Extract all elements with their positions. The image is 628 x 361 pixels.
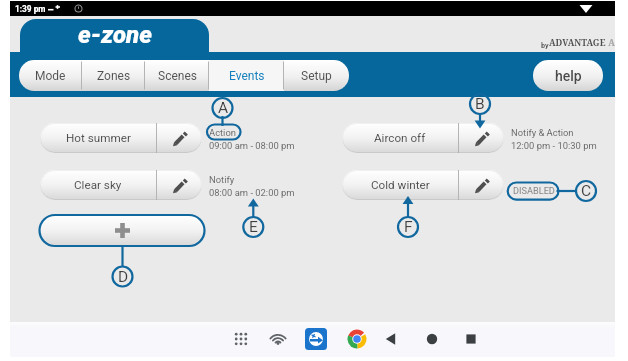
button[interactable]: Recents: [460, 328, 482, 350]
staticText: Cold winter: [371, 178, 430, 192]
staticText: E: [249, 218, 258, 236]
staticText: C: [581, 182, 592, 200]
staticText: DISABLED: [513, 185, 555, 196]
button[interactable]: Events: [209, 60, 284, 91]
button[interactable]: Edit Cold winter: [458, 170, 504, 200]
button[interactable]: Clear sky: [40, 170, 156, 200]
staticText: Hot summer: [66, 131, 131, 145]
staticText: Setup: [301, 69, 332, 83]
staticText: Scenes: [158, 69, 197, 83]
staticText: A: [218, 99, 229, 117]
staticText: D: [118, 268, 129, 286]
staticText: by: [541, 41, 549, 49]
staticText: Notify & Action: [511, 127, 574, 138]
button[interactable]: Wi-Fi: [267, 328, 289, 350]
button[interactable]: Home: [421, 328, 443, 350]
button[interactable]: Add event: [40, 215, 205, 246]
staticText: Zones: [97, 69, 131, 83]
staticText: 08:00 am - 02:00 pm: [209, 187, 295, 198]
button[interactable]: Mode: [19, 60, 82, 91]
button[interactable]: Edit Clear sky: [156, 170, 202, 200]
staticText: Notify: [209, 174, 235, 185]
button[interactable]: Setup: [284, 60, 349, 91]
staticText: e-zone: [78, 21, 152, 49]
button[interactable]: Chrome: [346, 328, 368, 350]
staticText: 12:00 pm - 10:30 pm: [511, 140, 597, 151]
button[interactable]: e-zone: [20, 19, 209, 52]
button[interactable]: Hot summer: [40, 123, 156, 153]
button[interactable]: Back: [380, 328, 402, 350]
button[interactable]: Scenes: [145, 60, 209, 91]
staticText: 09:00 am - 08:00 pm: [209, 140, 295, 151]
staticText: AIR: [606, 37, 615, 49]
button[interactable]: Aircon off: [342, 123, 458, 153]
staticText: F: [404, 218, 413, 236]
staticText: Mode: [35, 69, 66, 83]
button[interactable]: Edit Hot summer: [156, 123, 202, 153]
staticText: Aircon off: [374, 131, 426, 145]
button[interactable]: Apps: [230, 328, 252, 350]
staticText: Events: [229, 69, 265, 83]
button[interactable]: Edit Aircon off: [458, 123, 504, 153]
button[interactable]: Zones: [82, 60, 145, 91]
staticText: Clear sky: [74, 178, 122, 192]
staticText: 1:39 pm: [15, 4, 46, 14]
staticText: Action: [209, 127, 236, 138]
button[interactable]: Cold winter: [342, 170, 458, 200]
button[interactable]: MyPlace app: [305, 328, 327, 350]
staticText: ADVANTAGE: [549, 37, 606, 49]
staticText: help: [555, 68, 582, 84]
button[interactable]: help: [533, 60, 603, 91]
staticText: B: [475, 95, 485, 113]
